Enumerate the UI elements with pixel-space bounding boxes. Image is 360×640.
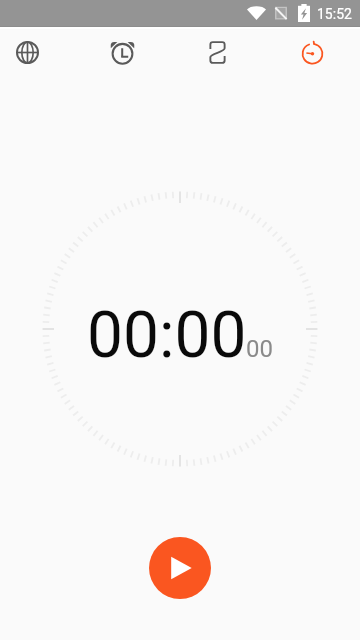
staticText: 15:52 bbox=[317, 6, 352, 22]
button[interactable]: World clock bbox=[3, 28, 51, 76]
staticText: 00 bbox=[246, 335, 273, 363]
staticText: 00:00 bbox=[87, 298, 247, 373]
button[interactable]: Alarm bbox=[98, 28, 146, 76]
button[interactable]: Stopwatch bbox=[288, 28, 336, 76]
button[interactable]: Timer bbox=[193, 28, 241, 76]
button[interactable]: Start bbox=[149, 537, 211, 599]
